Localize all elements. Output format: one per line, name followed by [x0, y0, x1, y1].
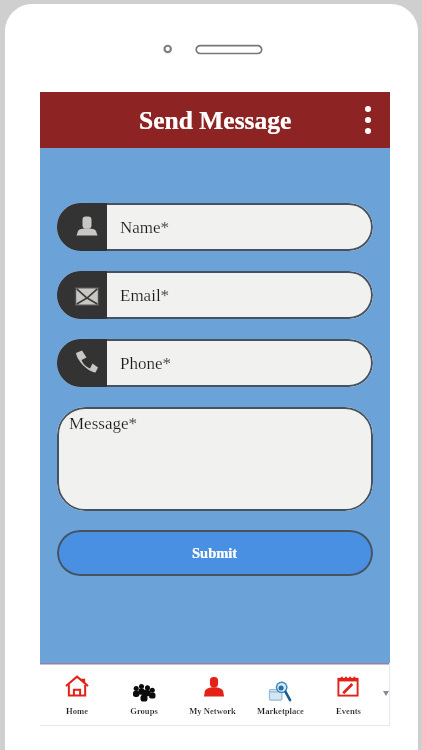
staticText: Marketplace: [257, 706, 304, 716]
button[interactable]: My Network: [178, 663, 246, 726]
button[interactable]: Groups: [110, 663, 178, 726]
staticText: Phone*: [120, 354, 171, 373]
button[interactable]: Home: [43, 663, 110, 726]
staticText: Groups: [130, 706, 158, 716]
button[interactable]: Marketplace: [246, 663, 314, 726]
button[interactable]: More options: [353, 105, 383, 135]
staticText: Submit: [192, 545, 238, 561]
button[interactable]: Events: [314, 663, 382, 726]
staticText: Message*: [69, 414, 137, 433]
staticText: Events: [336, 706, 361, 716]
staticText: Send Message: [139, 106, 292, 134]
button[interactable]: Email*: [57, 271, 373, 319]
staticText: Email*: [120, 286, 170, 305]
button[interactable]: Phone*: [57, 339, 373, 387]
button[interactable]: Submit: [57, 530, 373, 576]
button[interactable]: Name*: [57, 203, 373, 251]
staticText: Name*: [120, 218, 170, 237]
staticText: My Network: [189, 706, 236, 716]
button[interactable]: Message*: [57, 407, 373, 511]
staticText: Home: [66, 706, 88, 716]
